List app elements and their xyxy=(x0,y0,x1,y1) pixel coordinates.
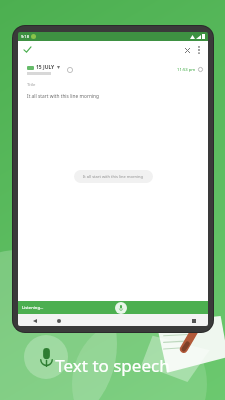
staticText: Title xyxy=(27,82,36,88)
staticText: Listening... xyxy=(22,305,44,311)
staticText: 15 JULY xyxy=(36,64,55,71)
button[interactable]: Close xyxy=(181,44,193,56)
button[interactable]: Back xyxy=(30,316,39,325)
staticText: 11:53 pm xyxy=(177,67,196,73)
button[interactable]: It all start with this line morning xyxy=(74,170,153,183)
staticText: 9:18 xyxy=(21,34,29,39)
staticText: It all start with this line morning xyxy=(27,93,100,100)
button[interactable]: Stop listening xyxy=(115,302,127,314)
button[interactable]: Home xyxy=(54,316,63,325)
staticText: Text to speech xyxy=(0,354,225,377)
staticText: It all start with this line morning xyxy=(83,174,144,179)
button[interactable]: Reminder xyxy=(65,65,74,74)
button[interactable]: More options xyxy=(193,44,205,56)
button[interactable]: Microphone xyxy=(24,335,68,379)
button[interactable]: Recent apps xyxy=(189,316,198,325)
button[interactable]: Done xyxy=(21,43,34,56)
